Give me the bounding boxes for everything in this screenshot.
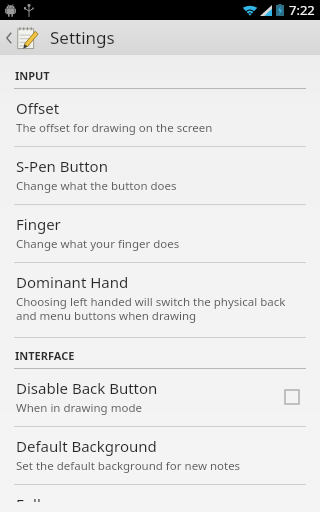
staticText: Finger bbox=[16, 214, 61, 234]
button[interactable]: Disable Back Button bbox=[0, 369, 320, 426]
staticText: Change what your finger does bbox=[16, 236, 180, 252]
staticText: Default Background bbox=[16, 436, 157, 456]
button[interactable]: Disable Back Button bbox=[276, 381, 308, 413]
staticText: Set the default background for new notes bbox=[16, 458, 241, 474]
button[interactable]: Offset bbox=[0, 89, 320, 146]
staticText: Fullscreen bbox=[16, 494, 88, 502]
button[interactable]: Default Background bbox=[0, 427, 320, 484]
button[interactable]: Dominant Hand bbox=[0, 263, 320, 333]
staticText: INTERFACE bbox=[15, 348, 75, 363]
staticText: Offset bbox=[16, 98, 60, 118]
staticText: INPUT bbox=[15, 68, 50, 83]
staticText: 7:22 bbox=[289, 1, 315, 19]
button[interactable]: Fullscreen bbox=[0, 485, 320, 512]
staticText: Dominant Hand bbox=[16, 272, 129, 292]
staticText: Settings bbox=[50, 26, 115, 49]
button[interactable]: Navigate up, Settings bbox=[0, 20, 320, 55]
staticText: Change what the button does bbox=[16, 178, 177, 194]
staticText: Choosing left handed will switch the phy… bbox=[16, 294, 286, 323]
button[interactable]: Finger bbox=[0, 205, 320, 262]
staticText: S-Pen Button bbox=[16, 156, 108, 176]
staticText: The offset for drawing on the screen bbox=[16, 120, 213, 136]
staticText: When in drawing mode bbox=[16, 400, 142, 416]
staticText: Disable Back Button bbox=[16, 378, 158, 398]
button[interactable]: S-Pen Button bbox=[0, 147, 320, 204]
